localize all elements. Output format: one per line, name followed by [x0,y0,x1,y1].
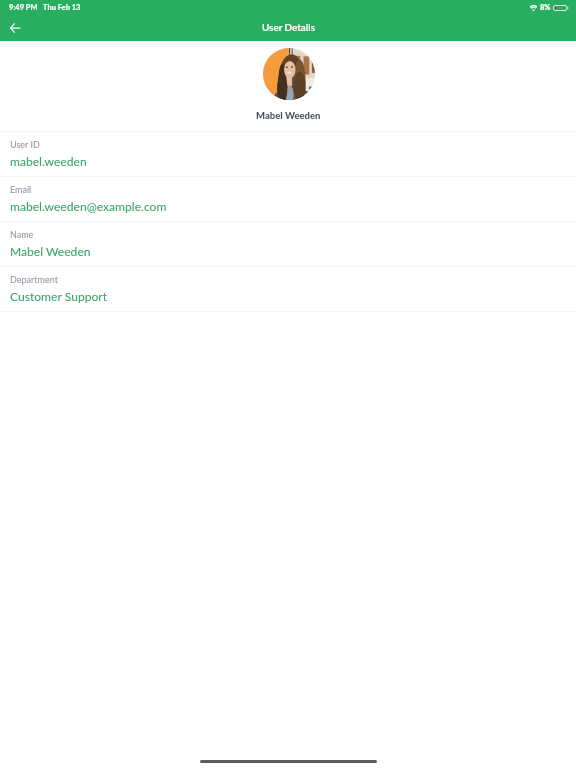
staticText: Name [10,229,34,240]
staticText: Thu Feb 13 [43,3,81,12]
staticText: Email [10,184,32,195]
button[interactable]: Back [0,13,27,40]
button[interactable]: Department [0,266,576,311]
button[interactable]: Email [0,176,576,221]
staticText: Customer Support [10,289,108,304]
staticText: Mabel Weeden [256,110,321,121]
staticText: User ID [10,139,40,150]
staticText: Department [10,274,58,285]
button[interactable]: Name [0,221,576,266]
staticText: mabel.weeden@example.com [10,199,167,214]
button[interactable]: User ID [0,131,576,176]
staticText: mabel.weeden [10,154,87,169]
staticText: 9:49 PM [9,3,38,12]
staticText: 8% [540,3,551,12]
staticText: User Details [262,21,315,33]
staticText: Mabel Weeden [10,244,91,259]
